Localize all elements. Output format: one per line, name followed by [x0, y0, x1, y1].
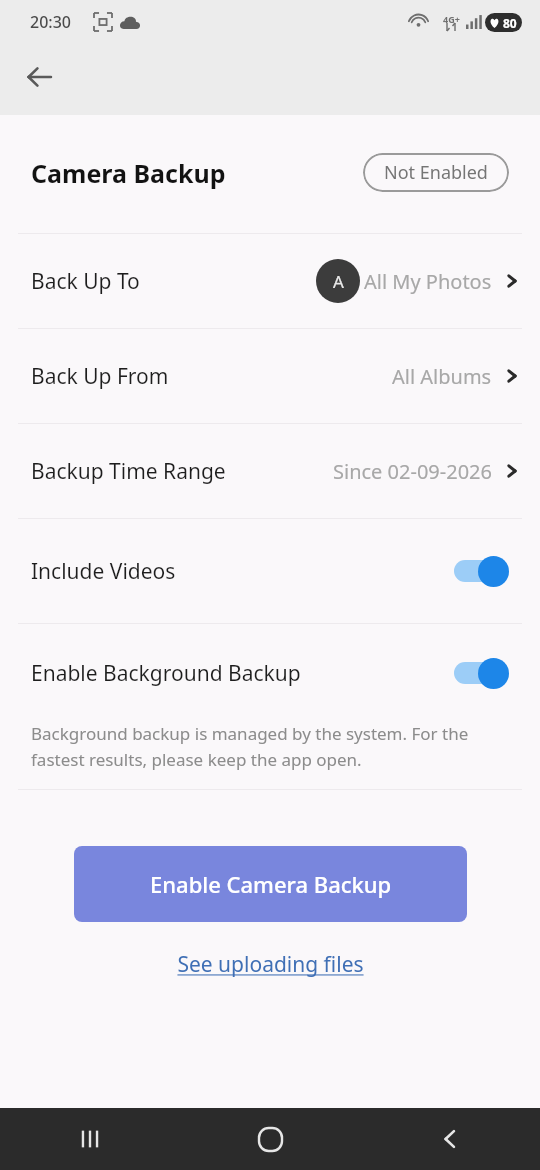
staticText: See uploading files — [177, 950, 364, 979]
staticText: 80 — [503, 15, 517, 31]
staticText: Backup Time Range — [31, 457, 226, 486]
button[interactable]: Enable Background Backup — [0, 624, 540, 722]
button[interactable]: Recents — [55, 1108, 125, 1170]
staticText: Back Up From — [31, 362, 169, 391]
staticText: Background backup is managed by the syst… — [31, 722, 516, 771]
staticText: Since 02-09-2026 — [333, 458, 492, 485]
button[interactable]: Backup Time Range — [0, 424, 540, 518]
staticText: Enable Camera Backup — [150, 869, 392, 899]
button[interactable]: See uploading files — [169, 942, 372, 987]
button[interactable]: Back — [415, 1108, 485, 1170]
staticText: Camera Backup — [31, 156, 226, 190]
button[interactable]: Back Up To — [0, 234, 540, 328]
staticText: A — [333, 270, 344, 293]
button[interactable]: Back — [15, 53, 63, 101]
button[interactable]: Not Enabled — [363, 153, 509, 192]
staticText: Back Up To — [31, 267, 140, 296]
staticText: Include Videos — [31, 557, 176, 586]
button[interactable]: Back Up From — [0, 329, 540, 423]
staticText: Enable Background Backup — [31, 659, 301, 688]
staticText: 20:30 — [30, 11, 71, 33]
staticText: All My Photos — [364, 268, 492, 295]
staticText: All Albums — [392, 363, 492, 390]
button[interactable]: Enable Camera Backup — [74, 846, 467, 922]
button[interactable]: Include Videos — [0, 519, 540, 623]
staticText: Not Enabled — [384, 160, 488, 185]
staticText: 4G+ — [443, 13, 460, 25]
button[interactable]: Home — [235, 1108, 305, 1170]
